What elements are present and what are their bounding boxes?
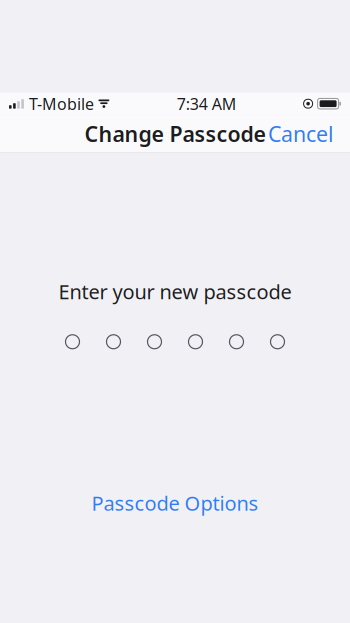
- staticText: Change Passcode: [84, 119, 265, 148]
- staticText: T-Mobile: [29, 93, 94, 114]
- staticText: 7:34 AM: [177, 93, 237, 114]
- button[interactable]: Passcode Options: [77, 484, 272, 522]
- staticText: Cancel: [268, 119, 334, 148]
- button[interactable]: Cancel: [258, 112, 344, 155]
- staticText: Enter your new passcode: [58, 278, 291, 305]
- staticText: Passcode Options: [91, 490, 258, 516]
